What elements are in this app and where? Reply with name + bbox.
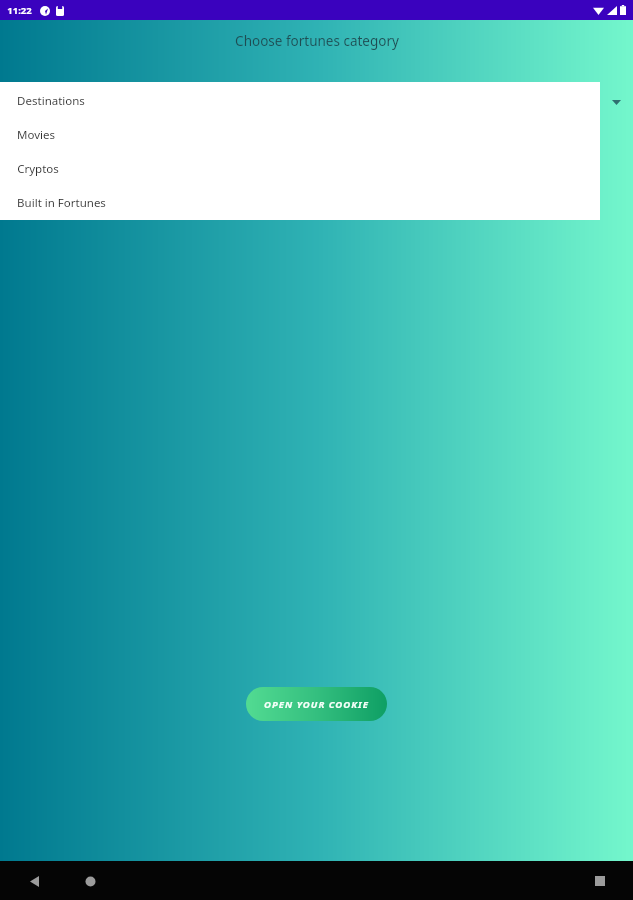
staticText: 11:22 [7,4,32,17]
button[interactable]: Home [72,863,108,899]
button[interactable]: Movies [0,118,600,152]
button[interactable]: Cryptos [0,152,600,186]
button[interactable]: Destinations [0,84,600,118]
staticText: Cryptos [17,161,59,177]
button[interactable]: Built in Fortunes [0,186,600,220]
staticText: OPEN YOUR COOKIE [264,698,369,711]
button[interactable]: Recent apps [582,863,618,899]
staticText: Choose fortunes category [235,32,399,50]
button[interactable]: Back [16,863,52,899]
staticText: Built in Fortunes [17,195,106,211]
button[interactable]: OPEN YOUR COOKIE [246,687,387,721]
staticText: Destinations [17,93,85,109]
button[interactable]: Open category dropdown [600,86,633,119]
staticText: Movies [17,127,55,143]
